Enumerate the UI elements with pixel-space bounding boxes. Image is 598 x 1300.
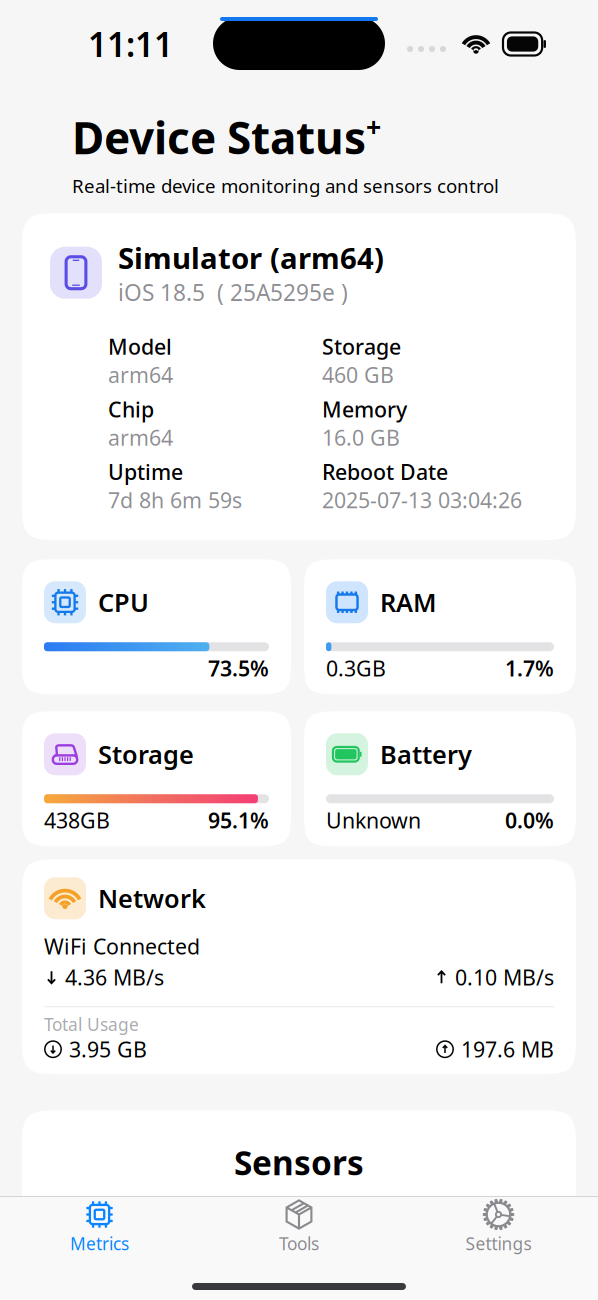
staticText: Chip xyxy=(108,395,154,423)
staticText: Model xyxy=(108,332,172,361)
staticText: Real-time device monitoring and sensors … xyxy=(72,173,499,198)
button[interactable]: CPU xyxy=(22,559,291,694)
staticText: Metrics xyxy=(70,1232,129,1255)
staticText: + xyxy=(366,109,381,144)
staticText: Network xyxy=(98,881,206,915)
staticText: 197.6 MB xyxy=(461,1035,554,1063)
staticText: Storage xyxy=(98,737,194,771)
staticText: Uptime xyxy=(108,458,183,486)
staticText: Battery xyxy=(380,737,472,771)
button[interactable]: Storage xyxy=(22,711,291,846)
staticText: CPU xyxy=(98,585,149,619)
staticText: 11:11 xyxy=(88,22,173,66)
staticText: 73.5% xyxy=(208,654,269,682)
staticText: Reboot Date xyxy=(322,458,448,486)
staticText: 3.95 GB xyxy=(69,1035,147,1063)
button[interactable]: Metrics xyxy=(0,1197,199,1265)
staticText: iOS 18.5 ( 25A5295e ) xyxy=(118,277,348,307)
staticText: 95.1% xyxy=(208,806,269,834)
staticText: Device Status xyxy=(72,108,366,166)
staticText: 0.0% xyxy=(505,806,554,834)
staticText: WiFi Connected xyxy=(44,932,200,960)
staticText: 1.7% xyxy=(505,654,554,682)
staticText: 2025-07-13 03:04:26 xyxy=(322,486,522,514)
staticText: 0.3GB xyxy=(326,654,386,682)
button[interactable]: Battery xyxy=(304,711,576,846)
staticText: 438GB xyxy=(44,806,110,834)
staticText: Simulator (arm64) xyxy=(118,238,384,277)
staticText: arm64 xyxy=(108,423,173,452)
staticText: Settings xyxy=(465,1232,531,1255)
staticText: 4.36 MB/s xyxy=(65,963,164,991)
button[interactable]: Tools xyxy=(199,1197,399,1265)
staticText: Total Usage xyxy=(44,1013,139,1036)
staticText: arm64 xyxy=(108,361,173,389)
staticText: Sensors xyxy=(234,1140,364,1185)
staticText: 16.0 GB xyxy=(322,423,400,452)
staticText: 7d 8h 6m 59s xyxy=(108,486,242,514)
staticText: 0.10 MB/s xyxy=(455,963,554,991)
button[interactable]: RAM xyxy=(304,559,576,694)
button[interactable]: Settings xyxy=(399,1197,598,1265)
staticText: Storage xyxy=(322,332,401,361)
staticText: Unknown xyxy=(326,806,421,834)
staticText: 460 GB xyxy=(322,361,394,389)
button[interactable]: Network xyxy=(22,859,576,1074)
staticText: Memory xyxy=(322,395,407,423)
staticText: RAM xyxy=(380,585,437,619)
staticText: Tools xyxy=(279,1232,319,1255)
